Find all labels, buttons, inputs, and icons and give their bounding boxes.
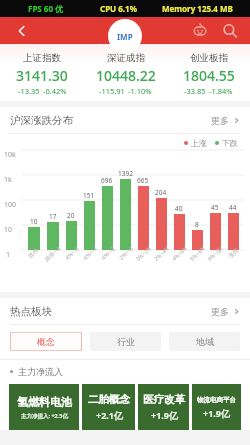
staticText: 0%~2% xyxy=(134,245,152,262)
staticText: CPU 6.1% xyxy=(100,3,137,14)
staticText: 涨停 xyxy=(227,247,240,260)
staticText: 创业板指 xyxy=(190,52,228,64)
button[interactable]: 二胎概念 xyxy=(82,384,135,430)
staticText: 6%~8% xyxy=(188,245,206,262)
button[interactable]: 更多 xyxy=(211,115,240,126)
button[interactable]: 行业 xyxy=(90,332,161,351)
staticText: 上涨 xyxy=(191,138,207,148)
staticText: 沪深涨跌分布 xyxy=(10,114,73,127)
staticText: 更多 xyxy=(211,306,229,317)
staticText: -1.84% xyxy=(209,86,233,96)
staticText: +1.9亿 xyxy=(203,407,230,419)
staticText: -2%~-0% xyxy=(116,245,134,262)
staticText: FPS 60 优 xyxy=(28,3,64,14)
button[interactable]: 创业板指 xyxy=(167,52,250,96)
button[interactable]: Search xyxy=(216,17,244,44)
staticText: 氢燃料电池 xyxy=(17,395,72,409)
button[interactable]: 更多 xyxy=(211,306,240,317)
staticText: 8 xyxy=(195,220,199,229)
button[interactable]: 深证成指 xyxy=(84,52,167,96)
staticText: 40 xyxy=(175,204,183,213)
button[interactable]: 物流电商平台 xyxy=(192,384,241,430)
staticText: IMP xyxy=(117,31,133,42)
staticText: 行业 xyxy=(117,336,135,347)
staticText: 665 xyxy=(137,176,149,185)
staticText: 热点板块 xyxy=(10,305,52,318)
staticText: 17 xyxy=(49,212,57,221)
staticText: +1.9亿 xyxy=(151,409,178,421)
staticText: 主力净流入: +2.5亿 xyxy=(21,412,68,420)
staticText: 地域 xyxy=(196,336,214,347)
staticText: -8%~-6% xyxy=(62,245,80,262)
staticText: 跌停~-8% xyxy=(43,245,62,263)
staticText: 4%~6% xyxy=(170,245,188,262)
staticText: 3141.30 xyxy=(16,66,68,85)
staticText: 1 xyxy=(6,250,11,260)
staticText: 8%~涨停 xyxy=(206,245,224,263)
staticText: 深证成指 xyxy=(107,52,145,64)
staticText: 696 xyxy=(101,176,113,185)
staticText: 45 xyxy=(211,203,219,212)
staticText: 1804.55 xyxy=(183,66,235,85)
staticText: 20 xyxy=(67,211,75,220)
staticText: -0.42% xyxy=(43,86,67,96)
staticText: 10k xyxy=(4,150,16,160)
staticText: +2.1亿 xyxy=(96,409,123,421)
button[interactable]: 地域 xyxy=(169,332,240,351)
staticText: 10 xyxy=(4,225,13,235)
staticText: 医疗改革 xyxy=(143,393,185,406)
staticText: 10 xyxy=(30,217,38,226)
button[interactable]: 上证指数 xyxy=(0,52,84,96)
staticText: 二胎概念 xyxy=(88,393,130,406)
staticText: 跌停 xyxy=(27,247,40,260)
staticText: 物流电商平台 xyxy=(197,396,236,404)
staticText: 44 xyxy=(229,203,237,212)
staticText: 204 xyxy=(155,188,167,197)
staticText: 概念 xyxy=(37,336,55,347)
staticText: -33.85 xyxy=(184,86,206,96)
staticText: -13.35 xyxy=(18,86,40,96)
button[interactable]: 概念 xyxy=(10,332,82,351)
staticText: 151 xyxy=(83,191,95,200)
staticText: -115.91 xyxy=(99,86,125,96)
staticText: 更多 xyxy=(211,115,229,126)
staticText: -6%~-4% xyxy=(80,245,98,262)
button[interactable]: IMP xyxy=(108,19,142,53)
button[interactable]: Back xyxy=(6,17,38,44)
button[interactable]: Assistant xyxy=(186,17,214,44)
staticText: -1.10% xyxy=(128,86,152,96)
staticText: 2%~4% xyxy=(152,245,170,262)
staticText: 上证指数 xyxy=(23,52,61,64)
staticText: -4%~-2% xyxy=(98,245,116,262)
staticText: 主力净流入 xyxy=(18,366,63,377)
staticText: 10448.22 xyxy=(96,66,156,85)
staticText: 1k xyxy=(4,175,12,185)
staticText: 下跌 xyxy=(222,138,238,148)
staticText: 100 xyxy=(4,200,17,210)
staticText: Memory 125.4 MB xyxy=(162,3,233,14)
button[interactable]: 氢燃料电池 xyxy=(9,384,79,430)
staticText: 1392 xyxy=(118,169,133,178)
button[interactable]: 医疗改革 xyxy=(138,384,189,430)
